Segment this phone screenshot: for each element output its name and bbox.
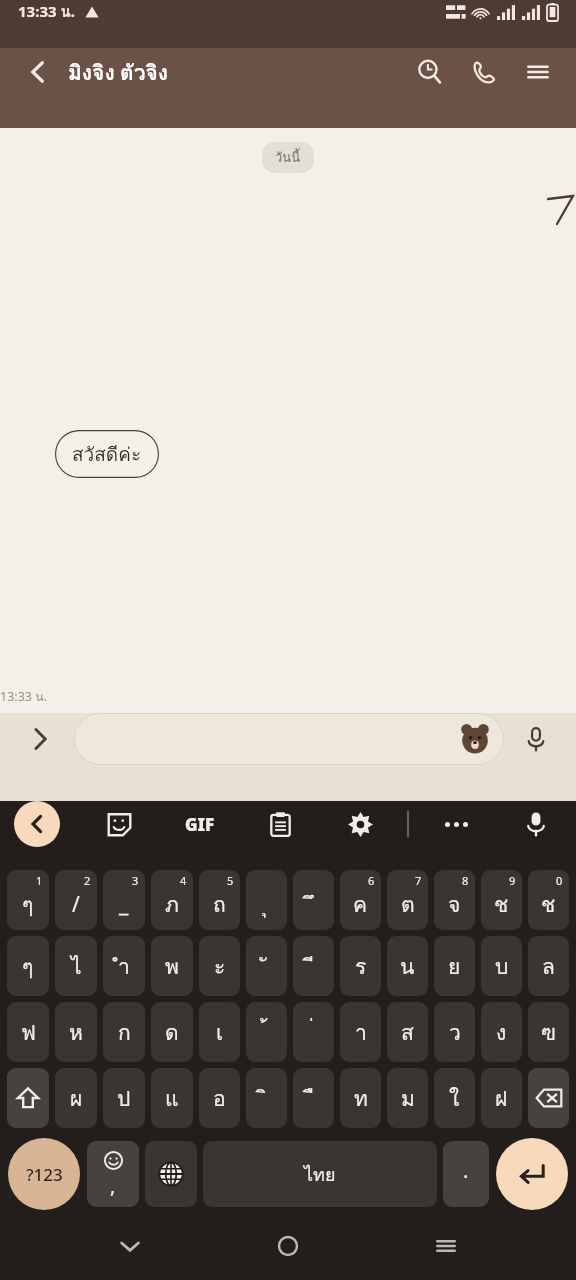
button[interactable]: สวัสดีค่ะ bbox=[55, 430, 159, 478]
button[interactable]: Emoji bbox=[87, 1141, 139, 1207]
staticText: ๆ bbox=[22, 950, 34, 983]
button[interactable]: ึ bbox=[293, 870, 334, 930]
staticText: ต bbox=[401, 888, 415, 921]
button[interactable]: ไทย bbox=[203, 1141, 437, 1207]
button[interactable]: ่ bbox=[293, 1002, 334, 1062]
button[interactable]: ะ bbox=[199, 936, 240, 996]
button[interactable]: Backspace bbox=[528, 1068, 569, 1128]
button[interactable]: Hide keyboard bbox=[102, 1218, 158, 1274]
button[interactable]: ก bbox=[103, 1002, 145, 1062]
button[interactable]: บ bbox=[481, 936, 522, 996]
button[interactable]: 7 bbox=[387, 870, 428, 930]
button[interactable]: Stickers bbox=[97, 802, 141, 846]
button[interactable]: 4 bbox=[151, 870, 193, 930]
button[interactable]: 5 bbox=[199, 870, 240, 930]
button[interactable]: Menu bbox=[514, 48, 562, 96]
button[interactable]: ี bbox=[293, 936, 334, 996]
button[interactable]: 1 bbox=[7, 870, 49, 930]
staticText: ฝ bbox=[495, 1082, 508, 1115]
button[interactable]: ้ bbox=[246, 1002, 287, 1062]
button[interactable]: วันนี้ bbox=[275, 147, 301, 168]
staticText: พ bbox=[165, 950, 179, 983]
button[interactable]: Change language bbox=[145, 1141, 197, 1207]
button[interactable]: ล bbox=[528, 936, 569, 996]
staticText: ง bbox=[496, 1016, 507, 1049]
staticText: บ bbox=[495, 950, 509, 983]
button[interactable]: Voice message bbox=[510, 713, 562, 765]
button[interactable]: Call bbox=[460, 48, 508, 96]
button[interactable]: ๆ bbox=[7, 936, 49, 996]
button[interactable]: ไ bbox=[55, 936, 97, 996]
button[interactable]: น bbox=[387, 936, 428, 996]
staticText: _ bbox=[119, 890, 129, 919]
button[interactable]: เ bbox=[199, 1002, 240, 1062]
button[interactable]: ท bbox=[340, 1068, 381, 1128]
staticText: ผ bbox=[70, 1082, 83, 1115]
button[interactable]: More options bbox=[434, 802, 478, 846]
staticText: ม bbox=[401, 1082, 415, 1115]
button[interactable]: ำ bbox=[103, 936, 145, 996]
button[interactable]: แ bbox=[151, 1068, 193, 1128]
button[interactable]: ส bbox=[387, 1002, 428, 1062]
button[interactable]: ด bbox=[151, 1002, 193, 1062]
staticText: ช bbox=[494, 888, 509, 921]
button[interactable]: GIF bbox=[178, 802, 222, 846]
button[interactable]: ง bbox=[481, 1002, 522, 1062]
button[interactable]: ฃ bbox=[528, 1002, 569, 1062]
button[interactable]: พ bbox=[151, 936, 193, 996]
button[interactable]: 9 bbox=[481, 870, 522, 930]
staticText: 1 bbox=[36, 873, 43, 888]
button[interactable]: ฝ bbox=[481, 1068, 522, 1128]
button[interactable]: Search history bbox=[406, 48, 454, 96]
button[interactable]: ฟ bbox=[7, 1002, 49, 1062]
button[interactable]: ผ bbox=[55, 1068, 97, 1128]
button[interactable]: ื bbox=[293, 1068, 334, 1128]
button[interactable]: Back bbox=[14, 48, 62, 96]
button[interactable]: Clipboard bbox=[258, 802, 302, 846]
staticText: ะ bbox=[214, 950, 226, 983]
button[interactable]: ป bbox=[103, 1068, 145, 1128]
button[interactable]: . bbox=[443, 1141, 489, 1207]
button[interactable]: Collapse toolbar bbox=[14, 801, 60, 847]
staticText: มิงจิง ตัวจิง bbox=[68, 56, 169, 89]
button[interactable]: อ bbox=[199, 1068, 240, 1128]
button[interactable]: Expand menu bbox=[14, 713, 66, 765]
button[interactable]: ใ bbox=[434, 1068, 475, 1128]
button[interactable]: ?123 bbox=[8, 1138, 80, 1210]
button[interactable]: Enter bbox=[496, 1138, 568, 1210]
staticText: ?123 bbox=[26, 1163, 63, 1186]
staticText: ค bbox=[353, 888, 368, 921]
button[interactable]: า bbox=[340, 1002, 381, 1062]
button[interactable]: ม bbox=[387, 1068, 428, 1128]
staticText: ร bbox=[355, 950, 367, 983]
button[interactable]: ร bbox=[340, 936, 381, 996]
button[interactable]: Home bbox=[260, 1218, 316, 1274]
staticText: 3 bbox=[132, 873, 139, 888]
button[interactable]: Stickers bbox=[458, 722, 492, 756]
button[interactable]: 3 bbox=[103, 870, 145, 930]
staticText: 4 bbox=[180, 873, 187, 888]
staticText: 6 bbox=[368, 873, 375, 888]
button[interactable]: 2 bbox=[55, 870, 97, 930]
staticText: ใ bbox=[449, 1082, 460, 1115]
button[interactable]: Recent apps bbox=[418, 1218, 474, 1274]
button[interactable]: ั bbox=[246, 936, 287, 996]
button[interactable]: ย bbox=[434, 936, 475, 996]
staticText: / bbox=[72, 890, 80, 919]
button[interactable]: ิ bbox=[246, 1068, 287, 1128]
button[interactable]: 6 bbox=[340, 870, 381, 930]
button[interactable]: Voice input bbox=[514, 802, 558, 846]
button[interactable]: Stickers bbox=[74, 713, 504, 765]
button[interactable]: Settings bbox=[338, 802, 382, 846]
staticText: 9 bbox=[509, 873, 516, 888]
staticText: สวัสดีค่ะ bbox=[72, 439, 142, 469]
staticText: 2 bbox=[84, 873, 91, 888]
button[interactable]: 0 bbox=[528, 870, 569, 930]
button[interactable]: Shift bbox=[7, 1068, 49, 1128]
button[interactable]: ว bbox=[434, 1002, 475, 1062]
staticText: 13:33 น. bbox=[0, 687, 48, 707]
button[interactable]: 8 bbox=[434, 870, 475, 930]
button[interactable]: ห bbox=[55, 1002, 97, 1062]
staticText: GIF bbox=[185, 813, 215, 836]
button[interactable]: ุ bbox=[246, 870, 287, 930]
